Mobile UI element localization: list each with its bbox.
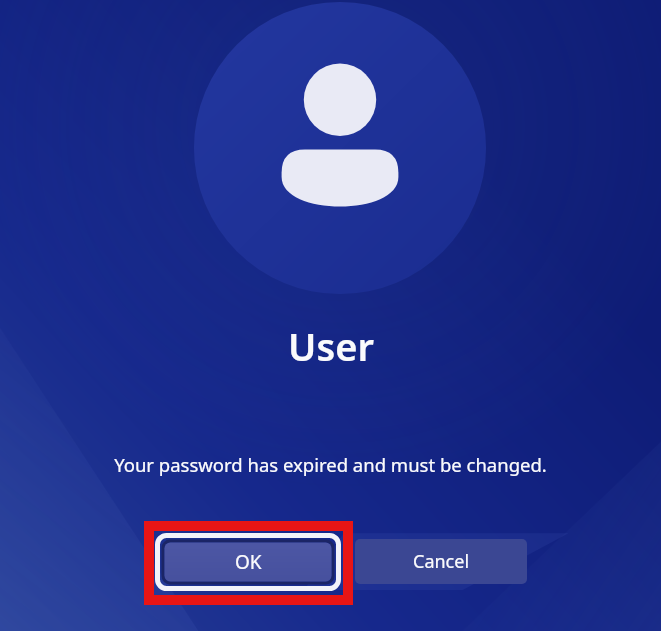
button[interactable]: OK (155, 533, 341, 591)
button[interactable]: Cancel (355, 539, 527, 584)
staticText: OK (235, 549, 262, 575)
other: Highlighted OK button (144, 521, 353, 605)
staticText: Your password has expired and must be ch… (114, 452, 547, 477)
staticText: User (288, 320, 374, 372)
staticText: Cancel (413, 549, 470, 574)
